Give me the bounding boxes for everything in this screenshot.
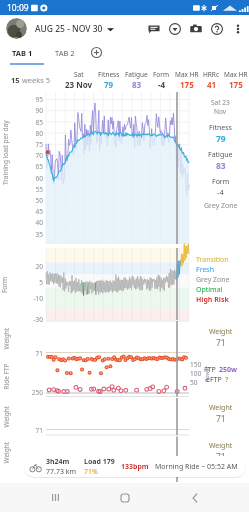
staticText: 60 <box>29 174 43 183</box>
staticText: 35 <box>29 230 43 239</box>
staticText: 150 <box>190 360 202 369</box>
staticText: weeks 5 <box>20 75 51 85</box>
button[interactable]: 3h24m <box>24 456 246 477</box>
staticText: ? <box>225 375 229 385</box>
staticText: 5 <box>30 278 43 287</box>
staticText: Weight <box>1 405 10 427</box>
staticText: Training load per day <box>1 120 10 185</box>
staticText: 133bpm <box>121 462 149 472</box>
staticText: Grey Zone <box>204 201 238 211</box>
staticText: 83 <box>216 160 226 172</box>
staticText: Weight <box>1 327 10 349</box>
button[interactable]: Home <box>110 483 139 512</box>
staticText: 85 <box>29 118 43 127</box>
staticText: 55 <box>29 185 43 194</box>
staticText: 50 <box>190 378 198 387</box>
staticText: Form <box>153 70 170 79</box>
staticText: 90 <box>29 106 43 115</box>
staticText: Power <box>203 365 210 382</box>
staticText: High Risk <box>196 295 229 305</box>
staticText: 71 <box>29 426 43 435</box>
staticText: 175 <box>180 79 194 90</box>
staticText: 75 <box>29 140 43 149</box>
staticText: 79 <box>216 133 226 145</box>
staticText: eFTP <box>206 375 222 385</box>
staticText: 40 <box>29 218 43 227</box>
staticText: Fatigue <box>125 70 148 79</box>
staticText: 50 <box>29 196 43 205</box>
staticText: Weight <box>209 327 233 337</box>
staticText: Fresh <box>196 265 215 275</box>
staticText: 250w <box>219 365 238 375</box>
staticText: Max HR <box>175 70 199 79</box>
button[interactable]: Profile <box>6 18 27 39</box>
staticText: -4 <box>158 79 166 90</box>
staticText: 71 <box>216 337 226 349</box>
staticText: -30 <box>27 315 43 324</box>
staticText: AUG 25 - NOV 30 <box>35 23 103 35</box>
staticText: Fatigue <box>208 150 233 160</box>
button[interactable]: Help <box>206 18 227 39</box>
staticText: 15 <box>11 75 20 85</box>
staticText: 71% <box>84 467 98 477</box>
staticText: Sat 23 <box>211 98 230 107</box>
staticText: Optimal <box>196 285 223 295</box>
button[interactable]: AUG 25 - NOV 30 <box>35 23 114 35</box>
staticText: 41 <box>207 79 217 90</box>
staticText: Sat <box>74 70 84 79</box>
staticText: FTP <box>204 365 216 375</box>
staticText: 250 <box>25 388 43 397</box>
button[interactable]: Camera <box>185 18 206 39</box>
staticText: Morning Ride ~ 05:52 AM <box>155 462 238 472</box>
staticText: HRRc <box>203 70 220 79</box>
staticText: 45 <box>29 207 43 216</box>
staticText: 83 <box>132 79 142 90</box>
staticText: 100 <box>190 369 202 378</box>
button[interactable]: More options <box>227 18 248 39</box>
staticText: 23 Nov <box>65 79 93 90</box>
staticText: 77.73 km <box>46 467 76 477</box>
staticText: Weight <box>209 441 233 451</box>
staticText: Max HR <box>224 70 248 79</box>
button[interactable]: Messages <box>143 18 164 39</box>
staticText: 80 <box>29 129 43 138</box>
staticText: 20 <box>30 262 43 271</box>
button[interactable]: TAB 1 <box>0 42 44 63</box>
button[interactable]: TAB 2 <box>44 42 86 63</box>
button[interactable]: Download <box>164 18 185 39</box>
staticText: Grey Zone <box>196 275 230 285</box>
staticText: 71 <box>216 413 226 425</box>
staticText: Weight <box>209 403 233 413</box>
staticText: 70 <box>29 151 43 160</box>
button[interactable]: Add tab <box>86 42 107 63</box>
staticText: TAB 2 <box>55 48 75 58</box>
staticText: 10:09 <box>7 2 29 14</box>
staticText: TAB 1 <box>12 48 33 58</box>
staticText: Fitness <box>209 123 232 133</box>
staticText: Form <box>212 177 230 187</box>
staticText: 79 <box>104 79 114 90</box>
staticText: 71 <box>216 451 226 463</box>
staticText: 175 <box>229 79 243 90</box>
button[interactable]: Back <box>180 483 209 512</box>
staticText: Ride FTP <box>1 363 10 389</box>
staticText: Form <box>0 276 9 293</box>
staticText: -10 <box>27 294 43 303</box>
button[interactable]: Recents <box>41 483 70 512</box>
staticText: 3h24m <box>46 457 70 467</box>
staticText: Nov <box>214 107 227 116</box>
staticText: Weight <box>1 441 10 463</box>
staticText: Transition <box>196 255 229 265</box>
staticText: 71 <box>29 349 43 358</box>
staticText: Fitness <box>98 70 120 79</box>
staticText: Load 179 <box>84 457 115 467</box>
staticText: 65 <box>29 162 43 171</box>
staticText: -4 <box>217 187 224 197</box>
staticText: 95 <box>29 95 43 104</box>
